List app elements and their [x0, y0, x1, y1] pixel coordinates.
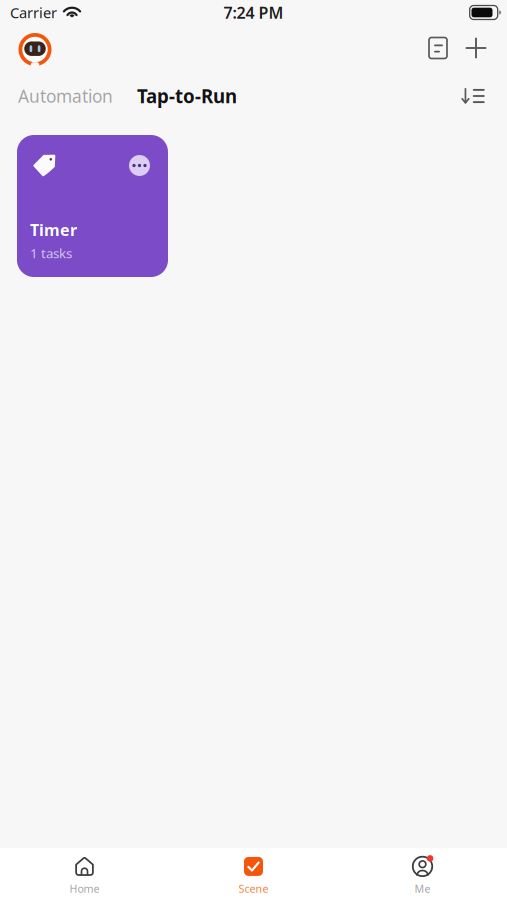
button[interactable]: Assistant	[16, 25, 54, 68]
button[interactable]: Me	[338, 848, 507, 900]
button[interactable]: Logs	[420, 29, 452, 65]
button[interactable]: Add	[452, 29, 489, 65]
button[interactable]: Automation	[18, 84, 113, 107]
button[interactable]: Tap-to-Run	[113, 84, 237, 108]
staticText: Home	[69, 881, 99, 896]
button[interactable]: Sort	[456, 82, 490, 110]
staticText: Tap-to-Run	[137, 84, 237, 108]
staticText: Me	[414, 881, 430, 896]
staticText: Scene	[238, 881, 268, 896]
button[interactable]: Timer	[17, 135, 168, 277]
button[interactable]: Home	[0, 848, 169, 900]
staticText: Automation	[18, 84, 113, 107]
staticText: 7:24 PM	[223, 2, 283, 23]
staticText: Carrier	[10, 3, 57, 22]
button[interactable]: Scene	[169, 848, 338, 900]
staticText: 1 tasks	[30, 244, 72, 262]
staticText: Timer	[30, 219, 77, 240]
